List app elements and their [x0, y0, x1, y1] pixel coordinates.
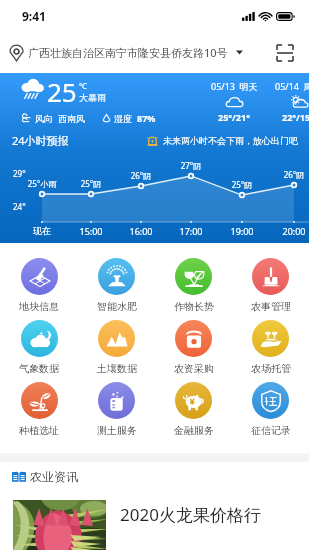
staticText: 金融服务 [174, 424, 214, 437]
button[interactable]: 05/13 明天 [204, 80, 264, 123]
staticText: 24小时预报 [12, 133, 69, 148]
button[interactable]: 农业资讯 [12, 462, 309, 490]
staticText: 智能水肥 [97, 300, 137, 313]
staticText: 现在 [18, 225, 66, 236]
button[interactable]: 金融服务 [155, 382, 232, 444]
button[interactable]: 土壤数据 [78, 320, 155, 382]
button[interactable]: 2020火龙果价格行 [13, 500, 309, 550]
staticText: 农业资讯 [30, 469, 78, 484]
button[interactable]: 气象数据 [0, 320, 78, 382]
staticText: 征信记录 [251, 424, 291, 437]
staticText: 广西壮族自治区南宁市隆安县侨友路10号 [28, 45, 228, 60]
staticText: 湿度 [114, 113, 132, 124]
staticText: 15:00 [67, 225, 115, 237]
staticText: 26°阴 [270, 169, 309, 180]
button[interactable]: 测土服务 [78, 382, 155, 444]
staticText: 9:41 [22, 8, 46, 24]
button[interactable]: 智能水肥 [78, 258, 155, 320]
staticText: 种植选址 [19, 424, 59, 437]
staticText: 26°阴 [117, 170, 165, 181]
staticText: 土壤数据 [97, 362, 137, 375]
staticText: 25°/21° [218, 111, 250, 123]
button[interactable]: 征信记录 [232, 382, 309, 444]
staticText: 风向 [35, 113, 53, 124]
button[interactable]: 农事管理 [232, 258, 309, 320]
button[interactable]: 农资采购 [155, 320, 232, 382]
button[interactable]: 农场托管 [232, 320, 309, 382]
staticText: 25°阴 [218, 179, 266, 190]
staticText: ℃ [79, 80, 87, 91]
button[interactable]: 种植选址 [0, 382, 78, 444]
button[interactable]: 作物长势 [155, 258, 232, 320]
staticText: 气象数据 [19, 362, 59, 375]
staticText: 05/14 周日 [275, 80, 309, 92]
staticText: 87% [137, 112, 156, 124]
staticText: 地块信息 [19, 300, 59, 313]
staticText: 农事管理 [251, 300, 291, 313]
button[interactable]: 05/14 周日 [268, 80, 309, 123]
staticText: 19:00 [218, 225, 266, 237]
staticText: 25°小雨 [18, 178, 66, 189]
staticText: 20:00 [270, 225, 309, 237]
staticText: 29° [13, 168, 26, 179]
staticText: 05/13 明天 [211, 80, 258, 92]
staticText: 25 [47, 74, 77, 109]
staticText: 农场托管 [251, 362, 291, 375]
staticText: 作物长势 [174, 300, 214, 313]
staticText: 未来两小时不会下雨，放心出门吧 [163, 135, 298, 146]
staticText: 16:00 [117, 225, 165, 237]
staticText: 17:00 [167, 225, 215, 237]
staticText: 大暴雨 [79, 92, 106, 103]
staticText: 测土服务 [97, 424, 137, 437]
staticText: 27°阴 [167, 160, 215, 171]
staticText: 西南风 [58, 113, 85, 124]
button[interactable]: Scan code [273, 41, 297, 65]
staticText: 22°/15° [282, 111, 309, 123]
button[interactable]: 地块信息 [0, 258, 78, 320]
staticText: 25°阴 [67, 178, 115, 189]
staticText: 24° [13, 201, 26, 212]
staticText: 2020火龙果价格行 [120, 503, 261, 526]
staticText: 农资采购 [174, 362, 214, 375]
